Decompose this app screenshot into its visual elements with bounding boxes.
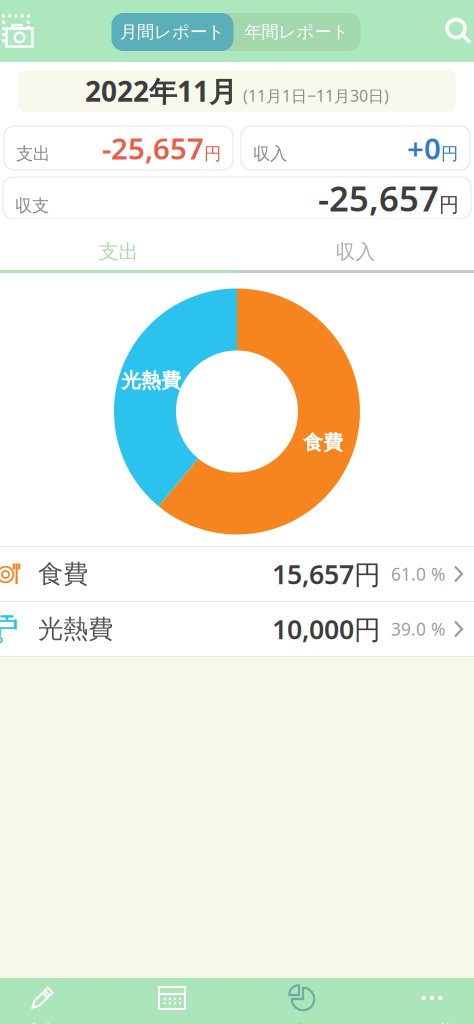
staticText: (11月1日−11月30日) xyxy=(243,85,389,106)
button[interactable]: 年間レポート xyxy=(233,13,360,51)
staticText: 収入 xyxy=(253,143,287,164)
staticText: 支出 xyxy=(98,239,138,264)
staticText: その他 xyxy=(411,1021,452,1024)
staticText: +0 xyxy=(407,128,441,167)
staticText: 2022年11月 xyxy=(85,72,237,110)
staticText: 円 xyxy=(204,143,221,164)
staticText: 食費 xyxy=(303,430,343,455)
button[interactable]: 支出 xyxy=(0,219,237,270)
staticText: 食費 xyxy=(38,558,88,589)
button[interactable]: 検索 xyxy=(424,0,474,62)
button[interactable]: 月間レポート xyxy=(111,13,233,51)
staticText: 収支 xyxy=(15,195,49,216)
staticText: 61.0 % xyxy=(391,562,445,585)
staticText: 15,657円 xyxy=(272,556,381,592)
button[interactable]: 食費 xyxy=(0,547,474,601)
button[interactable]: その他 xyxy=(400,978,464,1024)
staticText: 光熱費 xyxy=(38,613,113,644)
staticText: -25,657 xyxy=(102,128,204,167)
staticText: 年間レポート xyxy=(244,21,349,43)
button[interactable]: 収入 xyxy=(237,219,474,270)
button[interactable]: 入力 xyxy=(10,978,74,1024)
staticText: 10,000円 xyxy=(272,611,381,647)
button[interactable]: レポート xyxy=(270,978,334,1024)
staticText: 支出 xyxy=(16,143,50,164)
button[interactable]: カレンダー xyxy=(140,978,204,1024)
staticText: 収入 xyxy=(335,239,375,264)
staticText: 光熱費 xyxy=(121,368,181,393)
button[interactable]: レシート撮影 xyxy=(0,0,48,62)
staticText: 円 xyxy=(439,192,459,217)
button[interactable]: 光熱費 xyxy=(0,602,474,656)
staticText: -25,657 xyxy=(318,175,439,221)
staticText: 月間レポート xyxy=(120,21,225,43)
staticText: 入力 xyxy=(29,1021,55,1024)
staticText: 39.0 % xyxy=(391,617,445,640)
staticText: 円 xyxy=(441,143,458,164)
